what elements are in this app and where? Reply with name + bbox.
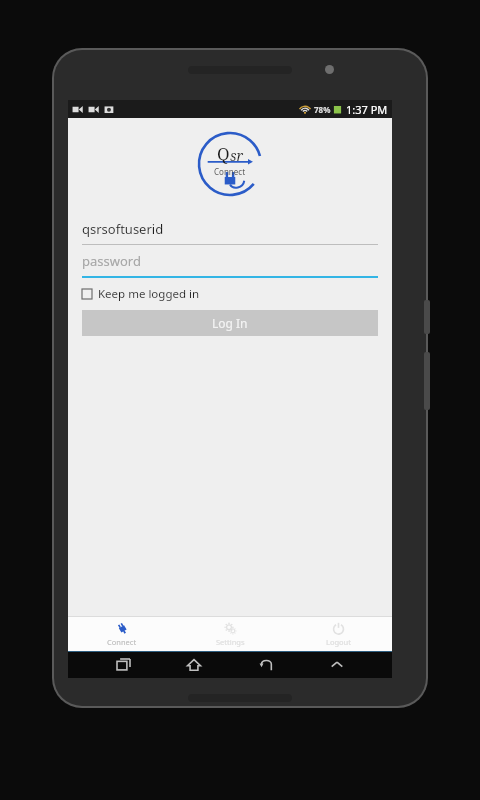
staticText: Connect [107, 637, 137, 647]
button[interactable]: password [82, 246, 378, 276]
staticText: 1:37 PM [346, 102, 388, 117]
staticText: password [82, 252, 141, 270]
button[interactable]: Back [249, 652, 283, 678]
staticText: Logout [326, 637, 351, 647]
staticText: qsrsoftuserid [82, 220, 164, 238]
button[interactable]: qsrsoftuserid [82, 214, 378, 244]
staticText: Connect [214, 166, 246, 177]
button[interactable]: Expand [320, 652, 354, 678]
button[interactable]: Connect [68, 617, 176, 651]
staticText: Log In [212, 315, 248, 331]
staticText: 78% [314, 104, 331, 115]
button[interactable]: Recent apps [106, 652, 140, 678]
staticText: Keep me logged in [98, 286, 200, 302]
button[interactable]: Settings [176, 617, 284, 651]
staticText: Q [217, 142, 230, 165]
staticText: Settings [216, 637, 245, 647]
button[interactable]: Home [177, 652, 211, 678]
button[interactable]: Keep me logged in [82, 284, 378, 304]
button[interactable]: Logout [284, 617, 392, 651]
staticText: sr [230, 146, 244, 165]
button[interactable]: Log In [82, 310, 378, 336]
